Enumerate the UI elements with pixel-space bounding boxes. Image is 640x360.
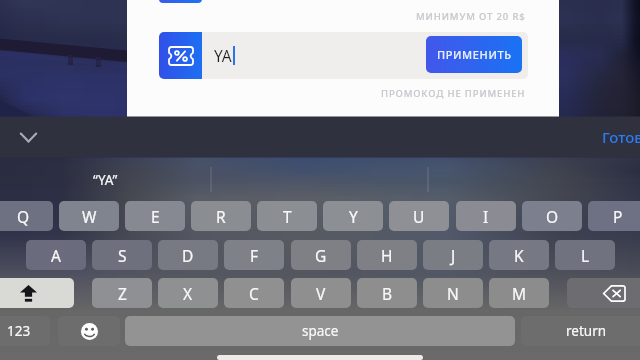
staticText: P bbox=[613, 206, 623, 227]
staticText: D bbox=[182, 245, 194, 266]
button[interactable]: U bbox=[389, 201, 449, 231]
button[interactable]: W bbox=[59, 201, 119, 231]
staticText: I bbox=[483, 206, 489, 227]
staticText: “YA” bbox=[93, 171, 118, 189]
staticText: T bbox=[283, 206, 292, 227]
button[interactable]: S bbox=[92, 240, 152, 270]
staticText: Готово bbox=[602, 127, 640, 147]
button[interactable]: ПРИМЕНИТЬ bbox=[426, 36, 522, 73]
staticText: N bbox=[447, 283, 459, 304]
button[interactable]: “YA” bbox=[0, 158, 211, 201]
staticText: Q bbox=[17, 206, 30, 227]
staticText: A bbox=[51, 245, 61, 266]
button[interactable]: E bbox=[125, 201, 185, 231]
staticText: L bbox=[581, 245, 590, 266]
staticText: X bbox=[183, 283, 193, 304]
staticText: R bbox=[216, 206, 226, 227]
button[interactable]: X bbox=[158, 278, 218, 308]
staticText: F bbox=[250, 245, 259, 266]
staticText: space bbox=[302, 322, 339, 340]
staticText: K bbox=[514, 245, 524, 266]
staticText: C bbox=[249, 283, 259, 304]
staticText: B bbox=[382, 283, 393, 304]
button[interactable]: G bbox=[291, 240, 351, 270]
staticText: V bbox=[316, 283, 326, 304]
button[interactable]: M bbox=[489, 278, 549, 308]
staticText: ПРОМОКОД НЕ ПРИМЕНЕН bbox=[381, 87, 526, 100]
staticText: J bbox=[451, 245, 456, 266]
button[interactable]: 123 bbox=[0, 316, 50, 346]
button[interactable]: B bbox=[357, 278, 417, 308]
button[interactable]: P bbox=[588, 201, 640, 231]
staticText: return bbox=[566, 322, 607, 340]
staticText: Z bbox=[118, 283, 127, 304]
button[interactable]: Q bbox=[0, 201, 53, 231]
staticText: S bbox=[118, 245, 127, 266]
staticText: Y bbox=[349, 206, 358, 227]
button[interactable]: N bbox=[423, 278, 483, 308]
staticText: G bbox=[315, 245, 327, 266]
button[interactable]: C bbox=[224, 278, 284, 308]
button[interactable] bbox=[428, 158, 640, 201]
staticText: МИНИМУМ ОТ 20 R$ bbox=[416, 10, 526, 23]
button[interactable]: Y bbox=[323, 201, 383, 231]
button[interactable]: I bbox=[456, 201, 516, 231]
button[interactable]: F bbox=[224, 240, 284, 270]
button[interactable]: Z bbox=[92, 278, 152, 308]
staticText: E bbox=[151, 206, 160, 227]
staticText: M bbox=[512, 283, 527, 304]
staticText: ПРИМЕНИТЬ bbox=[437, 47, 512, 62]
button[interactable]: A bbox=[26, 240, 86, 270]
button[interactable]: space bbox=[125, 316, 515, 346]
button[interactable]: L bbox=[555, 240, 615, 270]
staticText: O bbox=[546, 206, 559, 227]
staticText: 123 bbox=[7, 322, 31, 340]
button[interactable]: Готово bbox=[602, 124, 640, 150]
button[interactable]: Promo code bbox=[159, 32, 202, 79]
staticText: U bbox=[413, 206, 425, 227]
button[interactable]: Emoji keyboard bbox=[58, 316, 120, 346]
staticText: H bbox=[381, 245, 393, 266]
button[interactable]: O bbox=[522, 201, 582, 231]
button[interactable]: Backspace bbox=[567, 278, 640, 308]
button[interactable]: D bbox=[158, 240, 218, 270]
button[interactable]: Hide keyboard bbox=[12, 122, 44, 152]
staticText: YA bbox=[214, 45, 232, 66]
button[interactable]: return bbox=[521, 316, 640, 346]
button[interactable]: R bbox=[191, 201, 251, 231]
button[interactable]: H bbox=[357, 240, 417, 270]
staticText: W bbox=[82, 206, 97, 227]
button[interactable]: T bbox=[257, 201, 317, 231]
button[interactable]: V bbox=[291, 278, 351, 308]
button[interactable]: K bbox=[489, 240, 549, 270]
button[interactable] bbox=[211, 158, 428, 201]
button[interactable]: Shift bbox=[0, 278, 74, 308]
button[interactable]: J bbox=[423, 240, 483, 270]
